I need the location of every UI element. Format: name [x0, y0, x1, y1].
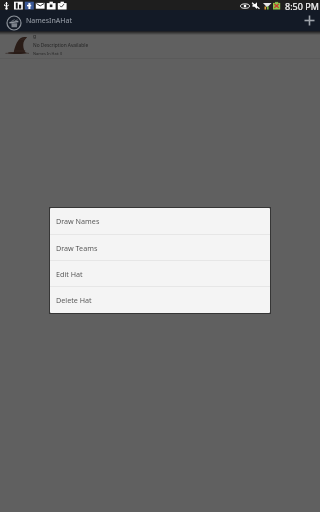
button[interactable]: Draw Names — [50, 208, 270, 234]
staticText: NamesInAHat — [26, 16, 72, 26]
staticText: 8:50 PM — [285, 0, 319, 10]
button[interactable]: Delete Hat — [50, 287, 270, 313]
staticText: Edit Hat — [56, 269, 83, 279]
button[interactable]: Draw Teams — [50, 235, 270, 260]
staticText: Draw Names — [56, 216, 100, 226]
staticText: Names In Hat: 0 — [33, 51, 63, 56]
staticText: Draw Teams — [56, 243, 98, 253]
staticText: g — [33, 33, 37, 40]
button[interactable]: g — [0, 31, 320, 58]
button[interactable]: Edit Hat — [50, 261, 270, 286]
staticText: No Description Available — [33, 42, 89, 49]
staticText: Delete Hat — [56, 295, 92, 305]
button[interactable]: Add — [299, 10, 320, 31]
